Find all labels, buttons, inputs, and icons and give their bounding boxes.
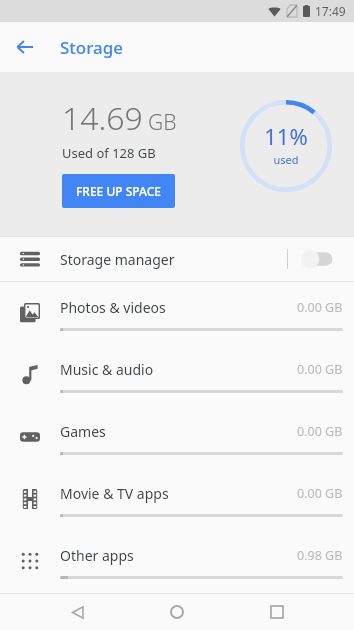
staticText: Storage manager [60,250,287,269]
staticText: 0.00 GB [297,423,343,440]
staticText: 17:49 [315,3,346,19]
button[interactable]: Games [0,406,354,468]
button[interactable]: Storage manager toggle [300,242,340,276]
staticText: used [273,152,299,167]
staticText: Games [60,422,297,441]
staticText: Photos & videos [60,298,297,317]
staticText: Movie & TV apps [60,484,297,503]
button[interactable]: Photos & videos [0,282,354,344]
staticText: Music & audio [60,360,297,379]
staticText: 0.00 GB [297,361,343,378]
button[interactable]: Music & audio [0,344,354,406]
button[interactable]: Home [154,594,200,630]
staticText: 11% [264,121,308,151]
button[interactable]: Recent apps [254,594,300,630]
staticText: 0.98 GB [297,547,343,564]
staticText: GB [148,108,177,137]
button[interactable]: Storage manager [0,237,354,281]
staticText: Storage [60,36,124,59]
staticText: 0.00 GB [297,299,343,316]
staticText: Other apps [60,546,297,565]
button[interactable]: Back [54,594,100,630]
button[interactable]: Movie & TV apps [0,468,354,530]
staticText: FREE UP SPACE [76,183,161,199]
button[interactable]: FREE UP SPACE [62,174,175,208]
staticText: 0.00 GB [297,485,343,502]
button[interactable]: Back [8,30,42,64]
staticText: 14.69 [62,96,143,140]
button[interactable]: Other apps [0,530,354,592]
staticText: Used of 128 GB [62,144,156,162]
